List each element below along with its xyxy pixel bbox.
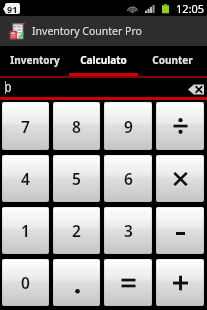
staticText: 5 <box>72 168 81 189</box>
staticText: Calculato <box>80 53 127 67</box>
staticText: 6 <box>124 168 133 189</box>
button[interactable]: 3 <box>104 207 152 254</box>
button[interactable]: 4 <box>2 155 49 202</box>
button[interactable]: Counter <box>138 46 207 73</box>
button[interactable]: 5 <box>53 155 100 202</box>
staticText: 2 <box>72 220 81 241</box>
button[interactable] <box>53 259 100 306</box>
staticText: 9 <box>124 116 133 137</box>
staticText: 91 <box>7 3 18 14</box>
button[interactable] <box>156 207 204 254</box>
staticText: Inventory Counter Pro <box>32 24 142 38</box>
staticText: 12:05 <box>176 1 205 16</box>
staticText: 4 <box>21 168 30 189</box>
staticText: 8 <box>72 116 81 137</box>
button[interactable] <box>156 155 204 202</box>
button[interactable]: Clear <box>188 84 205 95</box>
button[interactable]: 6 <box>104 155 152 202</box>
button[interactable]: Calculato <box>69 46 138 73</box>
button[interactable]: 9 <box>104 102 152 150</box>
staticText: 1 <box>21 220 30 241</box>
button[interactable]: 0 <box>2 259 49 306</box>
button[interactable]: 1 <box>2 207 49 254</box>
staticText: 3 <box>124 220 133 241</box>
button[interactable]: 8 <box>53 102 100 150</box>
staticText: 0 <box>21 272 30 293</box>
button[interactable] <box>156 102 204 150</box>
button[interactable]: 7 <box>2 102 49 150</box>
button[interactable]: 0 <box>0 78 207 97</box>
staticText: Counter <box>152 53 193 67</box>
staticText: Inventory <box>10 53 60 67</box>
staticText: 0 <box>5 80 12 95</box>
button[interactable]: 2 <box>53 207 100 254</box>
button[interactable] <box>156 259 204 306</box>
button[interactable] <box>104 259 152 306</box>
staticText: 7 <box>21 116 30 137</box>
button[interactable]: Inventory <box>0 46 69 73</box>
